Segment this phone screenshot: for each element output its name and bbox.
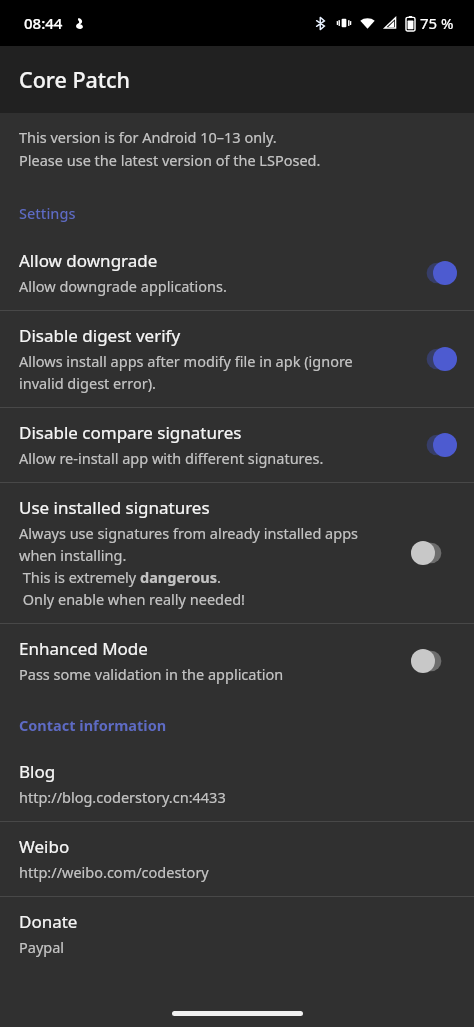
staticText: Blog: [19, 760, 56, 783]
staticText: Settings: [19, 203, 76, 223]
button[interactable]: Blog: [0, 747, 474, 821]
staticText: Allow re-install app with different sign…: [19, 448, 324, 468]
staticText: This is extremely dangerous.: [19, 567, 221, 587]
button[interactable]: Donate: [0, 897, 474, 971]
staticText: Use installed signatures: [19, 496, 210, 519]
button[interactable]: Use installed signatures: [0, 483, 474, 623]
button[interactable]: Enhanced Mode: [0, 624, 474, 698]
staticText: Paypal: [19, 937, 65, 957]
button[interactable]: Disable digest verify: [0, 311, 474, 407]
staticText: Pass some validation in the application: [19, 664, 284, 684]
staticText: Only enable when really needed!: [19, 589, 245, 609]
staticText: Weibo: [19, 835, 70, 858]
button[interactable]: Weibo: [0, 822, 474, 896]
staticText: Always use signatures from already insta…: [19, 523, 359, 543]
staticText: http://blog.coderstory.cn:4433: [19, 787, 226, 807]
staticText: Disable digest verify: [19, 324, 181, 347]
staticText: Please use the latest version of the LSP…: [19, 150, 321, 170]
staticText: Donate: [19, 910, 78, 933]
button[interactable]: Disable compare signatures: [0, 408, 474, 482]
staticText: Allow downgrade applications.: [19, 276, 227, 296]
button[interactable]: Toggle on: [408, 256, 460, 290]
button[interactable]: Toggle on: [408, 428, 460, 462]
staticText: 08:44: [24, 13, 63, 33]
button[interactable]: Allow downgrade: [0, 236, 474, 310]
staticText: Enhanced Mode: [19, 637, 148, 660]
staticText: when installing.: [19, 545, 127, 565]
staticText: 75 %: [420, 13, 454, 33]
staticText: Allows install apps after modify file in…: [19, 351, 353, 371]
staticText: invalid digest error).: [19, 373, 156, 393]
staticText: Core Patch: [19, 65, 131, 94]
button[interactable]: Toggle off: [408, 536, 460, 570]
staticText: Contact information: [19, 715, 167, 735]
button[interactable]: Toggle off: [408, 644, 460, 678]
staticText: Allow downgrade: [19, 249, 158, 272]
button[interactable]: Toggle on: [408, 342, 460, 376]
staticText: Disable compare signatures: [19, 421, 242, 444]
staticText: http://weibo.com/codestory: [19, 862, 209, 882]
staticText: This version is for Android 10–13 only.: [19, 127, 277, 147]
